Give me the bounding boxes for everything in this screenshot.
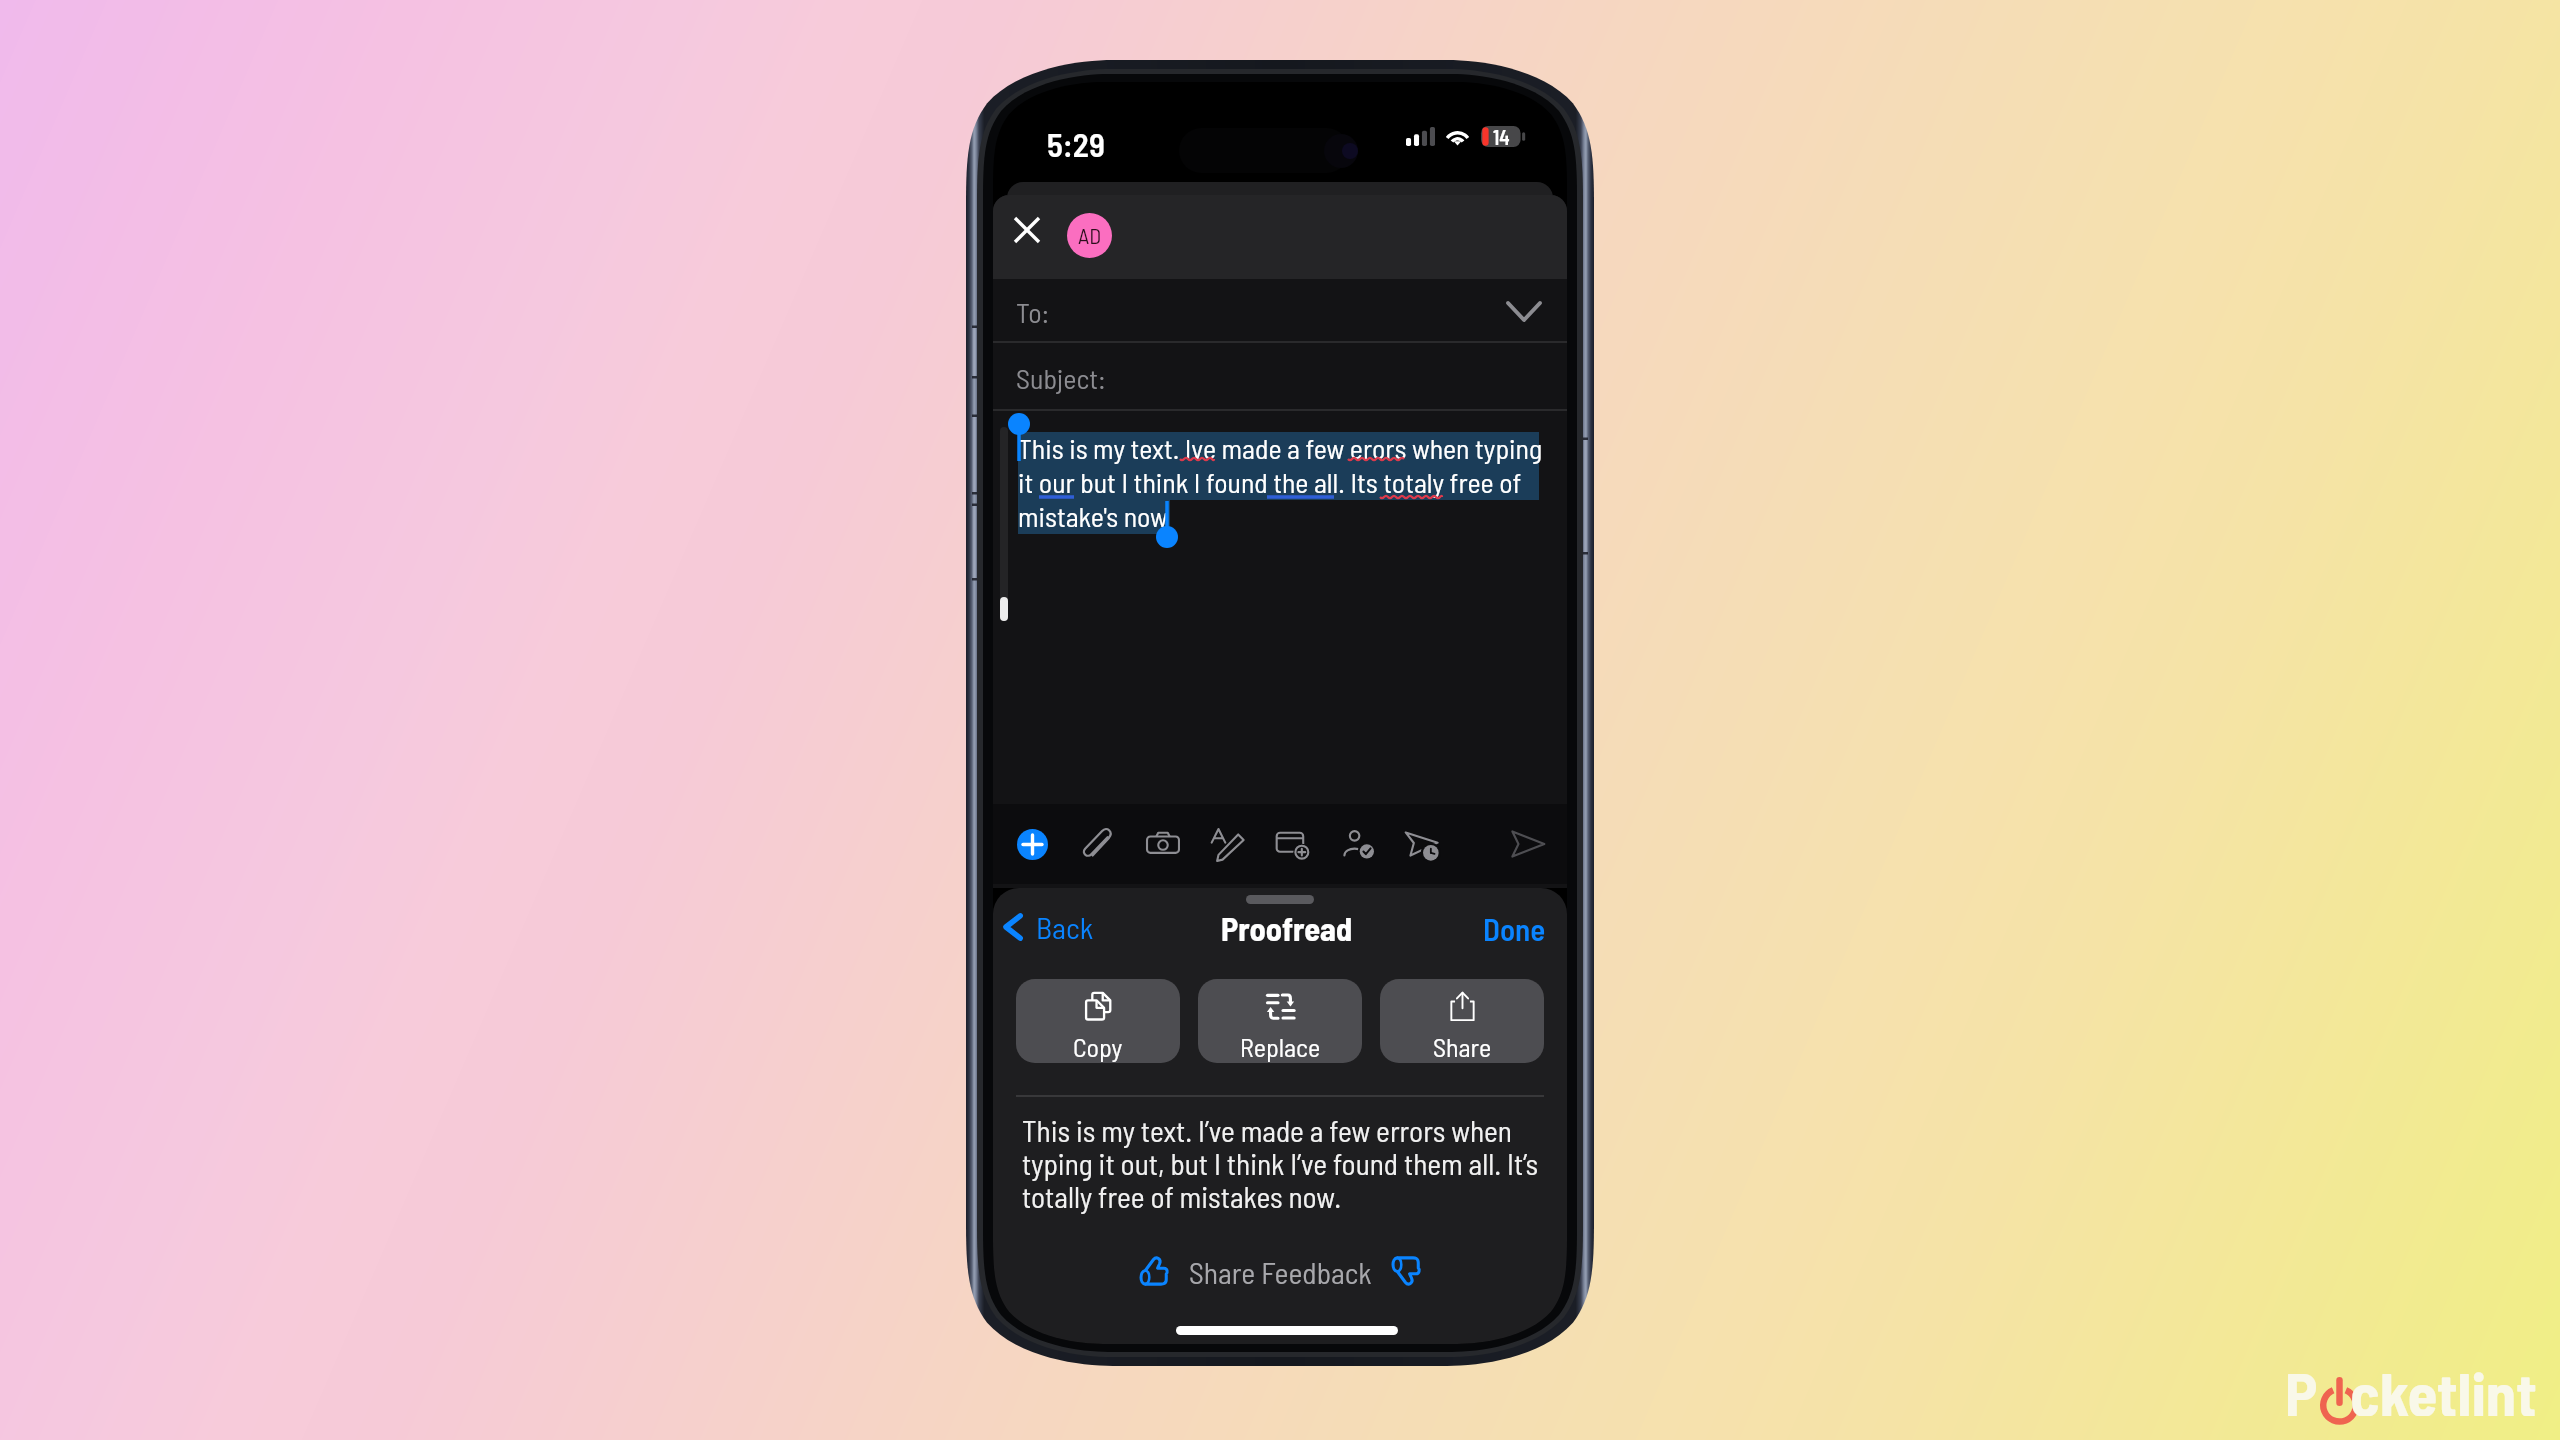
staticText: 14	[1493, 125, 1510, 149]
button[interactable]: Copy	[1016, 979, 1180, 1063]
staticText: This is my text. Ive made a few erors wh…	[1018, 431, 1543, 464]
button[interactable]: Add card	[1271, 822, 1315, 866]
staticText: Share	[1433, 1031, 1492, 1062]
staticText: Replace	[1240, 1031, 1321, 1062]
button[interactable]: Replace	[1198, 979, 1362, 1063]
staticText: typing it out, but I think I’ve found th…	[1022, 1146, 1539, 1181]
button[interactable]: Subject:	[993, 343, 1567, 411]
staticText: cketlint	[2350, 1356, 2537, 1416]
staticText: P	[2285, 1356, 2318, 1416]
button[interactable]: Camera	[1141, 822, 1185, 866]
button[interactable]: Thumbs up	[1131, 1248, 1175, 1292]
button[interactable]: Share Feedback	[1189, 1254, 1372, 1290]
button[interactable]: Close	[1005, 208, 1049, 252]
button[interactable]: Send later	[1400, 822, 1444, 866]
staticText: Copy	[1073, 1031, 1123, 1062]
button[interactable]: To:	[993, 279, 1567, 343]
staticText: totally free of mistakes now.	[1022, 1179, 1342, 1214]
staticText: This is my text. I’ve made a few errors …	[1022, 1113, 1513, 1148]
staticText: Subject:	[1016, 361, 1106, 395]
button[interactable]: Contact	[1336, 822, 1380, 866]
staticText: Proofread	[1221, 908, 1353, 947]
staticText: AD	[1078, 222, 1102, 248]
button[interactable]: AD	[1067, 213, 1112, 258]
button[interactable]: Share	[1380, 979, 1544, 1063]
staticText: mistake's now	[1018, 499, 1168, 532]
staticText: 5:29	[1047, 124, 1105, 164]
staticText: it our but I think I found the all. Its …	[1018, 465, 1522, 498]
staticText: Back	[1036, 909, 1094, 945]
button[interactable]: Attach	[1074, 822, 1118, 866]
button[interactable]: Send	[1506, 822, 1550, 866]
button[interactable]: Markup	[1206, 822, 1250, 866]
button[interactable]: Back	[1003, 907, 1094, 947]
staticText: To:	[1016, 295, 1050, 329]
button[interactable]: Add attachment	[1017, 829, 1048, 860]
button[interactable]: Done	[1483, 910, 1546, 947]
button[interactable]: Thumbs down	[1383, 1249, 1427, 1293]
